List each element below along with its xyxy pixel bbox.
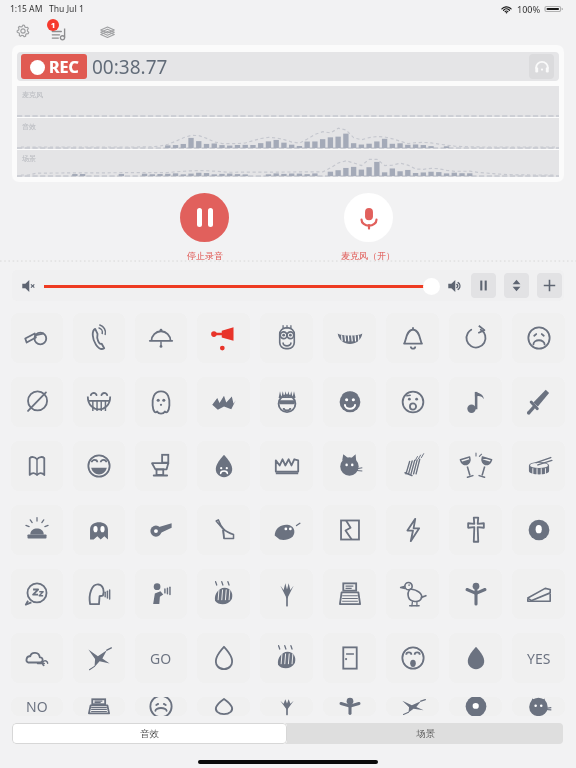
staticText: 场景 [416, 728, 435, 740]
staticText: 音效 [22, 122, 36, 131]
button[interactable]: Sound 55 [11, 697, 63, 716]
button[interactable]: Sound 45 [512, 569, 565, 619]
button[interactable]: Sound 54 [512, 633, 565, 683]
button[interactable]: Sound 58 [197, 697, 250, 716]
button[interactable]: Headphones [529, 54, 554, 79]
button[interactable]: Sound 26 [449, 441, 502, 491]
button[interactable]: Sound 4 [197, 313, 250, 363]
button[interactable]: 音效 [12, 723, 287, 744]
staticText: 100% [517, 3, 541, 15]
button[interactable]: Sound 21 [135, 441, 187, 491]
button[interactable]: Sound 10 [11, 377, 63, 427]
button[interactable]: Sound 37 [11, 569, 63, 619]
staticText: Thu Jul 1 [49, 3, 84, 15]
button[interactable]: Sound 18 [512, 377, 565, 427]
button[interactable]: Sound 56 [73, 697, 125, 716]
button[interactable]: Volume [448, 279, 462, 293]
button[interactable]: Sound 27 [512, 441, 565, 491]
button[interactable]: Sound 50 [260, 633, 313, 683]
button[interactable]: Sound 35 [449, 505, 502, 555]
button[interactable]: Sound 61 [386, 697, 439, 716]
button[interactable]: Sound 5 [260, 313, 313, 363]
button[interactable]: Sound 24 [323, 441, 376, 491]
staticText: GO [150, 649, 172, 668]
button[interactable]: Sound 13 [197, 377, 250, 427]
button[interactable]: Sound 41 [260, 569, 313, 619]
button[interactable]: Sound 2 [73, 313, 125, 363]
button[interactable]: Sound 51 [323, 633, 376, 683]
button[interactable]: Sound 43 [386, 569, 439, 619]
button[interactable]: Sound 12 [135, 377, 187, 427]
button[interactable]: Sound 36 [512, 505, 565, 555]
button[interactable]: Sound 52 [386, 633, 439, 683]
button[interactable]: Sound 19 [11, 441, 63, 491]
button[interactable]: Sound 23 [260, 441, 313, 491]
button[interactable]: Sound 40 [197, 569, 250, 619]
button[interactable]: Sound 6 [323, 313, 376, 363]
button[interactable]: Sound 25 [386, 441, 439, 491]
button[interactable]: Playlist [46, 19, 72, 45]
staticText: 1 [51, 20, 56, 30]
button[interactable]: Mute [22, 279, 36, 293]
button[interactable]: Sound 44 [449, 569, 502, 619]
button[interactable]: 场景 [287, 723, 563, 744]
staticText: 麦克风（开） [341, 250, 395, 261]
button[interactable]: Sound 46 [11, 633, 63, 683]
button[interactable]: Sound 42 [323, 569, 376, 619]
staticText: 停止录音 [187, 250, 223, 261]
button[interactable]: Sound 57 [135, 697, 187, 716]
button[interactable]: Sound 63 [512, 697, 565, 716]
staticText: YES [527, 649, 551, 668]
button[interactable]: 麦克风（开） [341, 193, 395, 261]
button[interactable]: Sound 49 [197, 633, 250, 683]
button[interactable]: Sound 62 [449, 697, 502, 716]
button[interactable]: Sound 20 [73, 441, 125, 491]
button[interactable]: Sound 9 [512, 313, 565, 363]
button[interactable]: Sound 28 [11, 505, 63, 555]
button[interactable]: Sound 59 [260, 697, 313, 716]
button[interactable]: Sound 30 [135, 505, 187, 555]
staticText: NO [26, 697, 48, 716]
button[interactable]: Add [537, 273, 562, 298]
button[interactable]: Sound 47 [73, 633, 125, 683]
button[interactable]: Sound 29 [73, 505, 125, 555]
button[interactable]: Sound 1 [11, 313, 63, 363]
button[interactable]: Sound 34 [386, 505, 439, 555]
button[interactable]: Sound 31 [197, 505, 250, 555]
button[interactable]: Sound 60 [323, 697, 376, 716]
button[interactable]: Sound 16 [386, 377, 439, 427]
staticText: 场景 [22, 154, 36, 163]
button[interactable]: Layers [94, 19, 120, 45]
button[interactable]: Pause [471, 273, 496, 298]
staticText: 音效 [140, 728, 159, 740]
button[interactable]: Sound 48 [135, 633, 187, 683]
button[interactable]: Sound 8 [449, 313, 502, 363]
button[interactable]: Sound 17 [449, 377, 502, 427]
button[interactable]: Sound 11 [73, 377, 125, 427]
button[interactable]: 停止录音 [180, 193, 229, 261]
button[interactable]: Sound 14 [260, 377, 313, 427]
button[interactable]: Reorder [504, 273, 529, 298]
button[interactable]: Sound 38 [73, 569, 125, 619]
button[interactable]: Settings [11, 19, 35, 43]
button[interactable]: Sound 33 [323, 505, 376, 555]
button[interactable]: Sound 53 [449, 633, 502, 683]
button[interactable]: Sound 3 [135, 313, 187, 363]
staticText: REC [49, 56, 79, 78]
button[interactable]: Sound 15 [323, 377, 376, 427]
button[interactable]: Sound 39 [135, 569, 187, 619]
button[interactable]: Sound 32 [260, 505, 313, 555]
button[interactable]: Sound 7 [386, 313, 439, 363]
button[interactable]: Sound 22 [197, 441, 250, 491]
staticText: 麦克风 [22, 90, 43, 99]
staticText: 00:38.77 [92, 54, 168, 80]
staticText: 1:15 AM [10, 3, 43, 15]
